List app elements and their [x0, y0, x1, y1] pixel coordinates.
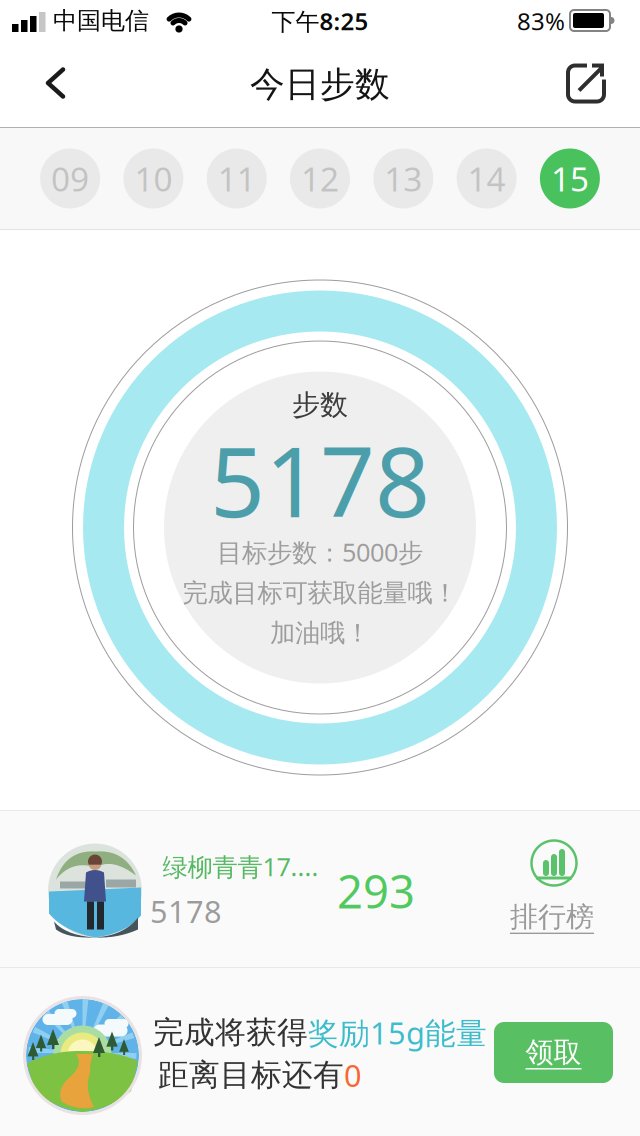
button[interactable]: 11 [207, 148, 267, 208]
staticText: 完成目标可获取能量哦！ [182, 577, 457, 608]
staticText: 目标步数：5000步 [217, 535, 423, 569]
staticText: 11 [218, 156, 256, 201]
button[interactable] [0, 39, 106, 126]
staticText: 绿柳青青17.... [162, 850, 318, 883]
button[interactable]: 14 [457, 148, 517, 208]
staticText: 09 [51, 156, 89, 201]
staticText: 10 [134, 156, 172, 201]
staticText: 加油哦！ [270, 617, 370, 648]
button[interactable]: 领取 [494, 1022, 613, 1083]
staticText: 下午8:25 [271, 5, 368, 37]
staticText: 领取 [525, 1035, 581, 1070]
staticText: 83% [517, 5, 565, 37]
button[interactable]: 排行榜 [511, 839, 597, 949]
button[interactable]: 13 [373, 148, 433, 208]
staticText: 步数 [292, 388, 348, 422]
staticText: 今日步数 [250, 63, 390, 106]
staticText: 中国电信 [53, 6, 149, 35]
button[interactable]: 10 [123, 148, 183, 208]
staticText: 15 [551, 156, 589, 201]
staticText: 14 [468, 156, 506, 201]
button[interactable]: 09 [40, 148, 100, 208]
staticText: 0 [344, 1055, 362, 1095]
staticText: 13 [384, 156, 422, 201]
staticText: 距离目标还有 [158, 1056, 344, 1094]
staticText: 293 [337, 861, 415, 921]
staticText: 5178 [210, 416, 430, 544]
button[interactable] [536, 39, 638, 127]
staticText: 12 [301, 156, 339, 201]
button[interactable]: 15 [540, 148, 600, 208]
staticText: 5178 [150, 891, 222, 931]
staticText: 排行榜 [510, 900, 594, 934]
staticText: 完成将获得 [153, 1014, 308, 1051]
staticText: 奖励15g能量 [308, 1012, 487, 1053]
button[interactable]: 12 [290, 148, 350, 208]
